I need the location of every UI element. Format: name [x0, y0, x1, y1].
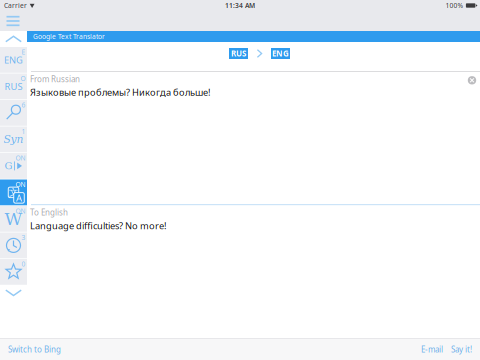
button[interactable]: Translate: [0, 179, 27, 205]
button[interactable]: More tools: [0, 285, 27, 301]
button[interactable]: Clear text: [464, 72, 480, 88]
staticText: O: [20, 74, 25, 83]
staticText: 6: [21, 100, 25, 109]
staticText: 1: [21, 127, 25, 136]
staticText: From Russian: [30, 74, 80, 84]
staticText: To English: [30, 207, 68, 218]
staticText: Google Text Translator: [33, 32, 105, 41]
staticText: ON: [15, 206, 25, 215]
button[interactable]: Say it!: [447, 339, 480, 360]
button[interactable]: E-mail: [417, 339, 447, 360]
button[interactable]: Favorites: [0, 259, 27, 285]
button[interactable]: Russian: [0, 73, 27, 99]
staticText: RUS: [4, 80, 22, 93]
staticText: Language difficulties? No more!: [30, 219, 167, 232]
staticText: Switch to Bing: [8, 344, 61, 355]
button[interactable]: RUS: [229, 48, 248, 59]
button[interactable]: Menu: [0, 12, 26, 30]
staticText: Syn: [3, 133, 23, 146]
staticText: Языковые проблемы? Никогда больше!: [30, 86, 211, 98]
button[interactable]: ENG: [271, 48, 290, 59]
button[interactable]: Previous tools: [0, 31, 27, 47]
staticText: ON: [15, 180, 25, 189]
button[interactable]: Search: [0, 100, 27, 126]
button[interactable]: History: [0, 232, 27, 258]
staticText: 文: [9, 187, 18, 198]
staticText: 0: [21, 259, 25, 268]
staticText: ON: [15, 153, 25, 162]
staticText: 100%: [445, 1, 463, 10]
staticText: E-mail: [421, 344, 443, 355]
staticText: W: [4, 209, 22, 229]
staticText: 3: [21, 233, 25, 242]
button[interactable]: English: [0, 47, 27, 73]
button[interactable]: Synonyms: [0, 126, 27, 152]
staticText: A: [16, 192, 22, 204]
staticText: ENG: [4, 54, 23, 66]
staticText: E: [21, 47, 25, 56]
button[interactable]: Wikipedia: [0, 206, 27, 232]
staticText: G: [5, 160, 13, 172]
button[interactable]: Switch to Bing: [0, 339, 61, 360]
button[interactable]: Google Play: [0, 153, 27, 179]
staticText: Say it!: [451, 344, 472, 355]
staticText: ENG: [272, 48, 289, 59]
staticText: Carrier: [4, 1, 27, 10]
staticText: RUS: [231, 48, 246, 59]
staticText: 11:34 AM: [225, 1, 255, 10]
